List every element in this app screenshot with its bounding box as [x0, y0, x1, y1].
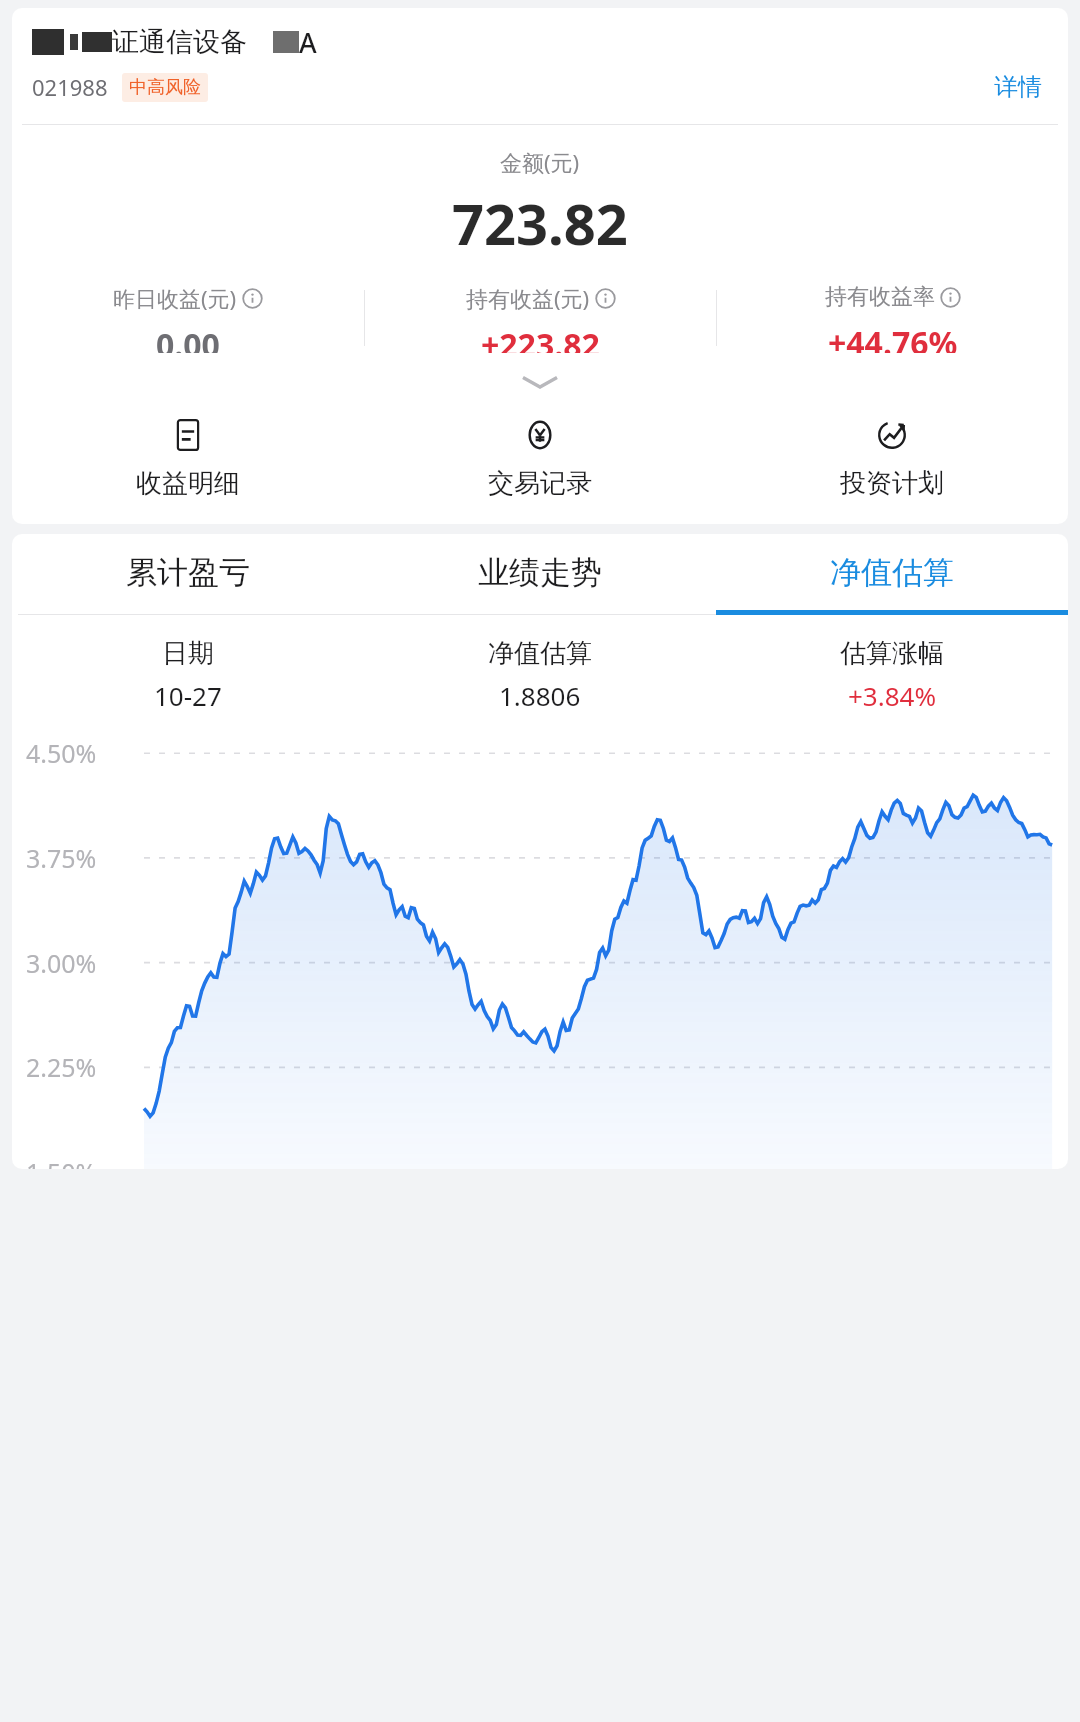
staticText: 021988 — [32, 72, 108, 102]
button[interactable]: 昨日收益(元) — [12, 283, 364, 353]
staticText: 中高风险 — [129, 76, 201, 99]
button[interactable]: 投资计划 — [716, 409, 1068, 504]
staticText: 10-27 — [154, 678, 222, 713]
staticText: 净值估算 — [830, 553, 954, 592]
button[interactable]: 持有收益(元) — [365, 283, 716, 353]
staticText: 证通信设备 — [112, 25, 247, 59]
button[interactable]: 业绩走势 — [364, 534, 716, 610]
staticText: 交易记录 — [488, 467, 592, 500]
staticText: 723.82 — [452, 185, 628, 261]
staticText: +44.76% — [828, 321, 958, 353]
staticText: 净值估算 — [488, 637, 592, 670]
button[interactable]: 展开 — [12, 369, 1068, 395]
staticText: 收益明细 — [136, 467, 240, 500]
staticText: 4.50% — [26, 736, 97, 770]
button[interactable]: 净值估算 — [716, 534, 1068, 610]
staticText: 昨日收益(元) — [113, 283, 237, 313]
button[interactable]: 累计盈亏 — [12, 534, 364, 610]
staticText: +3.84% — [848, 678, 937, 713]
staticText: 日期 — [162, 637, 214, 670]
staticText: A — [299, 24, 317, 61]
staticText: 持有收益(元) — [466, 283, 590, 313]
staticText: 3.00% — [26, 946, 97, 980]
staticText: 持有收益率 — [825, 283, 935, 311]
button[interactable]: 收益明细 — [12, 409, 364, 504]
button[interactable]: 详情 — [988, 68, 1048, 106]
staticText: 1.8806 — [499, 678, 581, 713]
staticText: 详情 — [994, 72, 1042, 102]
staticText: 估算涨幅 — [840, 637, 944, 670]
staticText: 累计盈亏 — [126, 553, 250, 592]
staticText: 3.75% — [26, 841, 97, 875]
button[interactable]: 持有收益率 — [717, 283, 1068, 353]
staticText: 1.50% — [26, 1155, 97, 1169]
staticText: 投资计划 — [840, 467, 944, 500]
staticText: +223.82 — [481, 323, 600, 353]
staticText: 金额(元) — [500, 147, 580, 177]
staticText: 0.00 — [156, 323, 220, 353]
button[interactable]: 交易记录 — [364, 409, 716, 504]
staticText: 2.25% — [26, 1050, 97, 1084]
staticText: 业绩走势 — [478, 553, 602, 592]
